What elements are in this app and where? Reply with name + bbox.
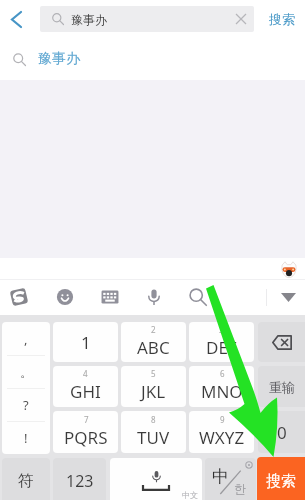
staticText: 搜索 — [266, 472, 296, 491]
button[interactable]: Sogou input — [0, 279, 40, 315]
staticText: ? — [23, 396, 29, 414]
staticText: 0 — [277, 421, 287, 444]
staticText: 3 — [219, 324, 224, 335]
button[interactable]: Clear text — [228, 6, 254, 32]
staticText: 123 — [66, 470, 94, 492]
staticText: 重输 — [269, 379, 295, 395]
staticText: DEF — [206, 336, 237, 359]
button[interactable]: , — [2, 322, 50, 355]
staticText: 4 — [83, 368, 88, 379]
button[interactable]: 重输 — [258, 366, 305, 407]
button[interactable]: MNO — [189, 366, 254, 407]
button[interactable]: 搜索 — [258, 0, 305, 38]
staticText: 中 — [212, 466, 229, 487]
button[interactable]: Back — [0, 0, 40, 38]
staticText: PQRS — [64, 426, 108, 449]
staticText: 9 — [220, 414, 225, 425]
staticText: 8 — [151, 414, 156, 425]
button[interactable]: DEF — [189, 322, 254, 362]
button[interactable]: ! — [2, 422, 50, 454]
button[interactable]: Hide keyboard — [271, 279, 305, 315]
button[interactable]: 豫事办 — [0, 38, 305, 80]
button[interactable]: TUV — [121, 411, 186, 453]
button[interactable]: 。 — [2, 356, 50, 388]
button[interactable]: Search — [177, 279, 219, 315]
staticText: MNO — [201, 380, 243, 403]
button[interactable]: 123 — [53, 458, 106, 500]
staticText: 豫事办 — [71, 12, 107, 27]
staticText: GHI — [70, 380, 101, 403]
button[interactable]: 1 — [53, 322, 118, 362]
button[interactable]: 0 — [258, 411, 305, 453]
button[interactable]: Delete — [258, 322, 305, 362]
button[interactable]: 中/한 — [205, 458, 256, 500]
staticText: 搜索 — [269, 11, 295, 27]
staticText: 6 — [220, 368, 225, 379]
button[interactable]: ABC — [121, 322, 186, 362]
button[interactable]: Keyboard layout — [89, 279, 131, 315]
button[interactable]: Assistant — [280, 260, 298, 278]
staticText: 5 — [151, 368, 156, 379]
button[interactable]: WXYZ — [189, 411, 254, 453]
staticText: , — [24, 330, 28, 348]
button[interactable]: JKL — [121, 366, 186, 407]
staticText: 한 — [234, 481, 246, 496]
staticText: JKL — [141, 380, 166, 403]
staticText: 符 — [18, 471, 34, 491]
button[interactable]: 符 — [2, 458, 50, 500]
staticText: ! — [24, 429, 28, 447]
staticText: 中文 — [182, 490, 198, 500]
staticText: 。 — [20, 364, 33, 380]
button[interactable]: 搜索 — [257, 457, 305, 500]
staticText: ABC — [137, 336, 170, 359]
button[interactable]: 豫事办 — [40, 6, 254, 32]
staticText: 2 — [151, 324, 156, 335]
button[interactable]: Space — [110, 458, 202, 500]
staticText: 1 — [81, 331, 91, 354]
button[interactable]: PQRS — [53, 411, 118, 453]
staticText: 7 — [84, 414, 89, 425]
staticText: TUV — [137, 426, 170, 449]
staticText: WXYZ — [199, 426, 245, 449]
button[interactable]: ? — [2, 389, 50, 421]
button[interactable]: GHI — [53, 366, 118, 407]
button[interactable]: Emoji — [44, 279, 86, 315]
button[interactable]: Voice input — [133, 279, 175, 315]
staticText: 豫事办 — [38, 50, 80, 68]
